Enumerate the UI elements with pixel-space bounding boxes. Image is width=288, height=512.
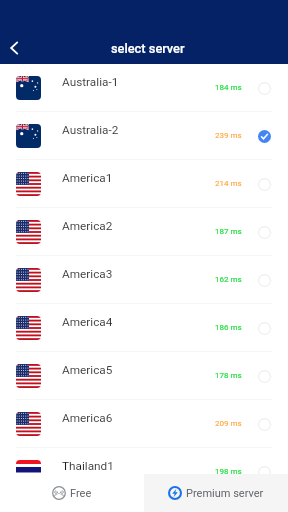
button[interactable]: Australia-2 [0,112,288,160]
staticText: America2 [62,219,113,233]
staticText: America3 [62,267,113,281]
staticText: 178 ms [215,371,242,380]
button[interactable]: Australia-1 [0,64,288,112]
staticText: 162 ms [215,275,242,284]
button[interactable]: America2 [0,208,288,256]
button[interactable]: America3 [0,256,288,304]
staticText: 186 ms [215,323,242,332]
staticText: Premium server [186,487,264,500]
button[interactable]: Thailand1 [0,448,288,496]
staticText: select server [111,41,185,56]
staticText: Australia-1 [62,75,119,89]
staticText: 214 ms [215,179,242,188]
staticText: 184 ms [215,83,242,92]
staticText: America1 [62,171,113,185]
staticText: 187 ms [215,227,242,236]
staticText: 239 ms [215,131,242,140]
button[interactable]: America5 [0,352,288,400]
button[interactable]: Premium server [144,474,288,512]
button[interactable]: America4 [0,304,288,352]
staticText: Australia-2 [62,123,119,137]
staticText: America4 [62,315,113,329]
button[interactable]: America6 [0,400,288,448]
button[interactable]: Free [0,474,144,512]
button[interactable]: Back [0,34,28,62]
staticText: 209 ms [215,419,242,428]
staticText: 198 ms [215,467,242,476]
staticText: Thailand1 [62,459,114,473]
staticText: America6 [62,411,113,425]
button[interactable]: America1 [0,160,288,208]
staticText: America5 [62,363,113,377]
staticText: Free [70,487,92,500]
